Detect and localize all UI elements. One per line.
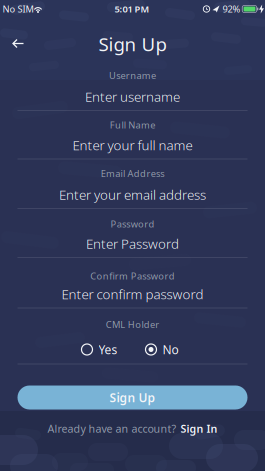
- button[interactable]: Email Address: [17, 179, 247, 209]
- staticText: Yes: [98, 341, 117, 357]
- button[interactable]: No: [145, 341, 178, 357]
- staticText: No: [162, 341, 178, 357]
- button[interactable]: Password: [17, 228, 247, 258]
- button[interactable]: Username: [17, 81, 247, 111]
- button[interactable]: Sign In: [180, 421, 217, 436]
- staticText: Already have an account?: [47, 421, 176, 436]
- staticText: Enter username: [85, 88, 180, 105]
- staticText: Enter your email address: [59, 186, 206, 203]
- staticText: CML Holder: [106, 318, 159, 331]
- button[interactable]: Confirm Password: [17, 279, 247, 309]
- staticText: Password: [110, 218, 155, 230]
- staticText: Full Name: [110, 119, 155, 131]
- staticText: Email Address: [101, 167, 164, 180]
- staticText: 5:01 PM: [114, 3, 149, 15]
- staticText: No SIM: [2, 3, 33, 15]
- button[interactable]: Back: [6, 33, 29, 54]
- staticText: Enter confirm password: [61, 285, 203, 303]
- button[interactable]: Full Name: [17, 130, 247, 160]
- button[interactable]: Sign Up: [17, 385, 247, 409]
- staticText: Sign Up: [109, 389, 155, 405]
- staticText: Enter your full name: [72, 136, 192, 154]
- staticText: Sign In: [180, 421, 217, 436]
- staticText: Sign Up: [98, 32, 166, 56]
- staticText: Username: [109, 69, 156, 82]
- staticText: 92%: [222, 3, 240, 15]
- button[interactable]: Yes: [81, 341, 117, 357]
- staticText: Enter Password: [86, 235, 179, 252]
- staticText: Confirm Password: [90, 270, 175, 282]
